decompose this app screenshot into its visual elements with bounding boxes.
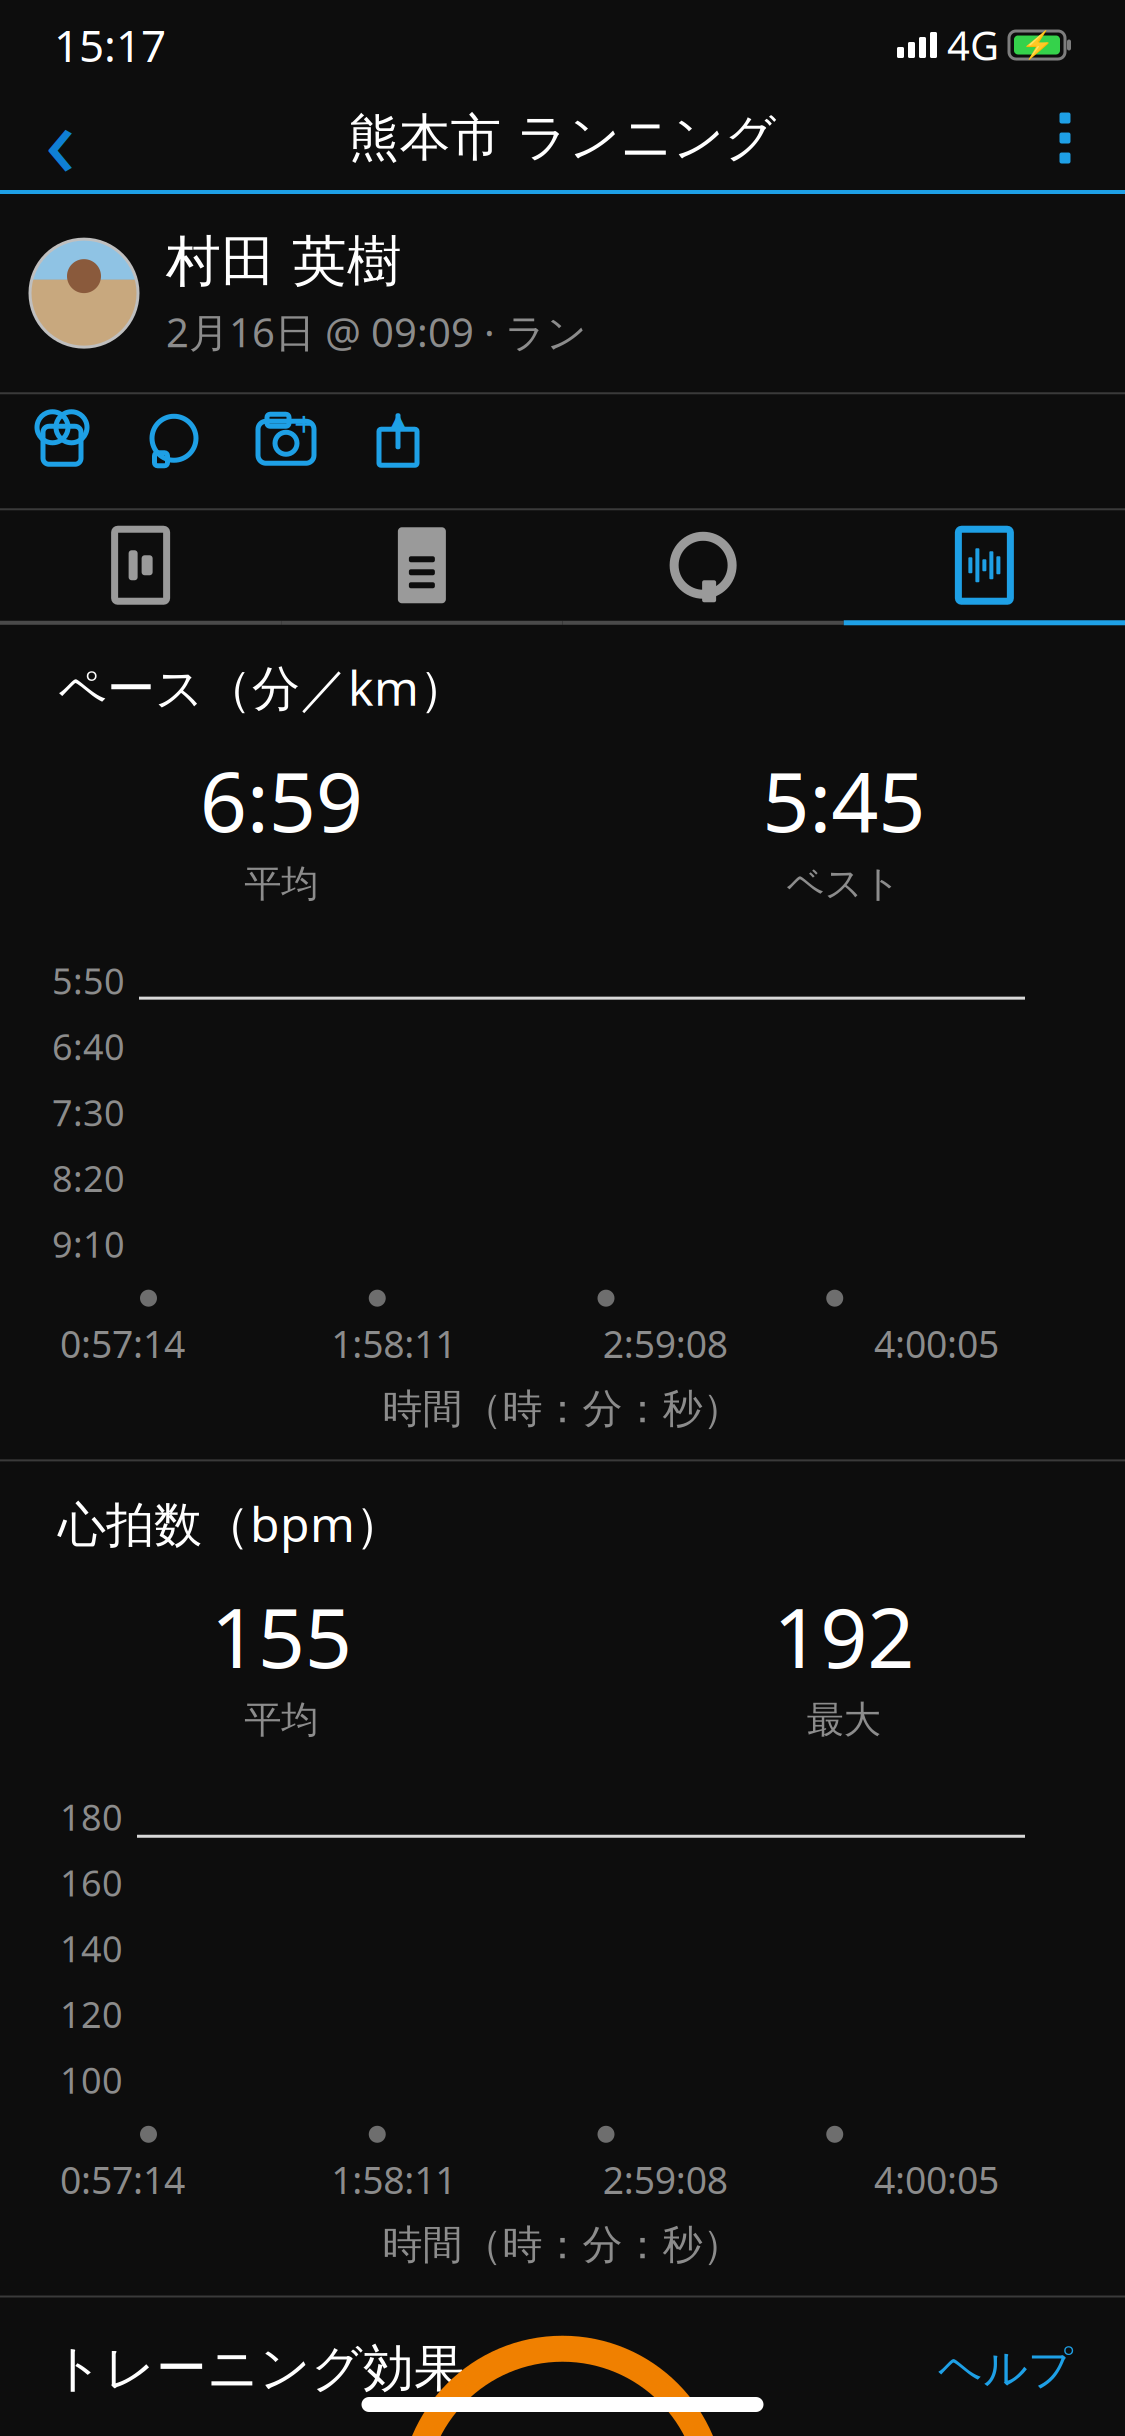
staticText: 村田 英樹 [166,228,402,295]
staticText: 0:57:14 [60,2155,185,2204]
staticText: 最大 [807,1697,881,1743]
staticText: ▲ [389,407,406,433]
staticText: 5:45 [762,745,925,855]
staticText: 155 [211,1581,352,1691]
button[interactable]: Like [6,394,118,482]
button[interactable]: Map [0,510,281,620]
staticText: 1:58:11 [331,2155,456,2204]
button[interactable]: Charts [844,510,1125,620]
staticText: 時間（時：分：秒） [382,1384,742,1433]
staticText: 160 [60,1859,123,1906]
staticText: 心拍数（bpm） [58,1491,403,1555]
staticText: ‹ [44,71,75,205]
staticText: 5:50 [52,957,125,1004]
staticText: 4:00:05 [874,1319,999,1368]
staticText: 4:00:05 [874,2155,999,2204]
staticText: トレーニング効果 [52,2337,465,2400]
staticText: 15:17 [54,16,166,74]
staticText: 180 [60,1793,123,1841]
staticText: 平均 [244,1697,318,1743]
staticText: 140 [60,1924,123,1972]
staticText: ペース（分／km） [58,655,467,719]
staticText: + [294,400,314,446]
staticText: ベスト [787,861,901,907]
button[interactable]: Back [12,90,108,186]
button[interactable]: Add photo [230,394,342,482]
staticText: 時間（時：分：秒） [382,2220,742,2269]
staticText: 9:10 [52,1220,125,1268]
staticText: 熊本市 ランニング [348,107,776,169]
staticText: ヘルプ [938,2342,1073,2396]
staticText: 平均 [244,861,318,907]
staticText: 0:57:14 [60,1319,185,1368]
button[interactable]: Comment [118,394,230,482]
staticText: 192 [773,1581,914,1691]
button[interactable]: 村田 英樹 [0,194,1125,392]
staticText: 6:59 [200,745,363,855]
staticText: 7:30 [52,1088,125,1136]
button[interactable]: More options [1017,90,1113,186]
staticText: 2:59:08 [603,2155,728,2204]
staticText: 120 [60,1990,123,2038]
staticText: 4G [947,18,999,71]
staticText: 2月16日 @ 09:09 · ラン [166,305,587,358]
button[interactable]: ヘルプ [938,2342,1073,2396]
staticText: 1:58:11 [331,1319,456,1368]
staticText: 100 [60,2056,123,2104]
button[interactable]: Details [281,510,562,620]
button[interactable]: Share [342,394,454,482]
button[interactable]: Laps [562,510,844,620]
staticText: 8:20 [52,1154,125,1202]
staticText: 6:40 [52,1022,125,1070]
staticText: ⚡ [1020,30,1053,60]
staticText: 2:59:08 [603,1319,728,1368]
